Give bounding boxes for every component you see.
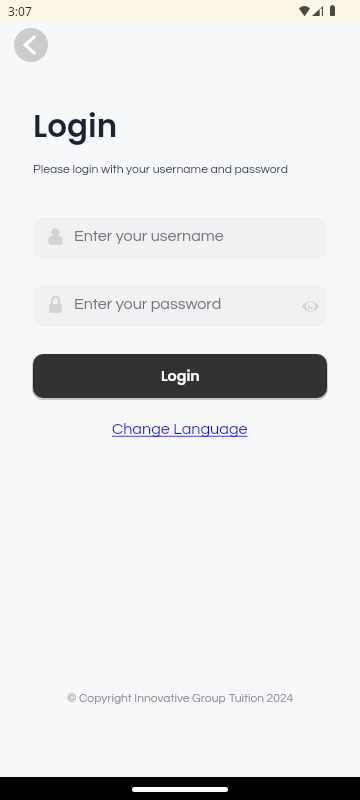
button[interactable]: Show password xyxy=(297,293,323,319)
button[interactable]: Enter your username xyxy=(33,217,327,259)
staticText: Login xyxy=(33,104,118,147)
staticText: 3:07 xyxy=(8,3,32,19)
staticText: Please login with your username and pass… xyxy=(33,163,288,176)
staticText: © Copyright Innovative Group Tuition 202… xyxy=(67,692,294,704)
button[interactable]: Enter your password xyxy=(33,285,327,327)
staticText: Login xyxy=(161,366,200,386)
button[interactable]: Login xyxy=(33,354,327,398)
button[interactable]: Back xyxy=(14,28,48,62)
staticText: Enter your password xyxy=(74,296,222,313)
staticText: Enter your username xyxy=(74,228,224,245)
button[interactable]: Change Language xyxy=(110,421,250,438)
